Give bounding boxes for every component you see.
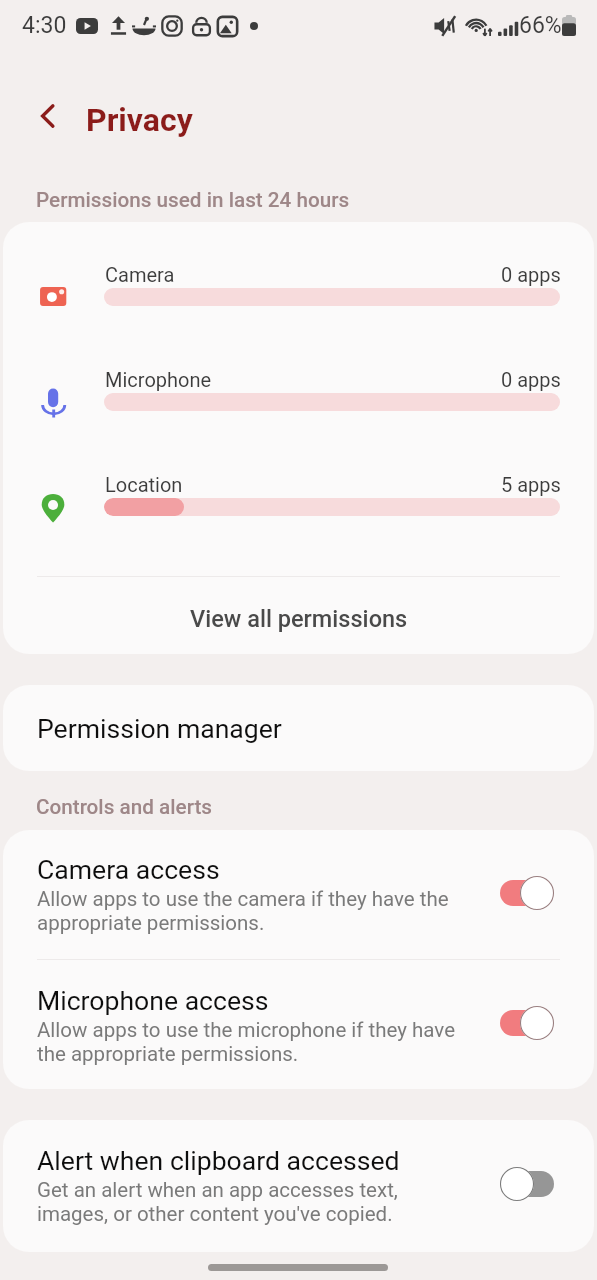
staticText: Privacy <box>86 101 193 139</box>
staticText: Controls and alerts <box>36 795 212 819</box>
button[interactable]: Navigate up <box>28 96 68 136</box>
button[interactable]: View all permissions <box>3 577 594 654</box>
staticText: Permissions used in last 24 hours <box>36 188 350 212</box>
staticText: Microphone access <box>37 985 269 1016</box>
staticText: View all permissions <box>190 605 408 633</box>
button[interactable]: Turn on Alert when clipboard accessed <box>499 1166 555 1202</box>
button[interactable]: Permission manager <box>3 685 594 771</box>
button[interactable]: Turn off Camera access <box>499 875 555 911</box>
button[interactable]: Alert when clipboard accessed <box>3 1120 594 1252</box>
staticText: 5 apps <box>501 473 561 496</box>
staticText: Location <box>105 473 183 496</box>
staticText: 4:30 <box>22 12 67 39</box>
button[interactable]: Microphone access <box>3 960 594 1089</box>
button[interactable]: Turn off Microphone access <box>499 1005 555 1041</box>
staticText: Microphone <box>105 368 212 391</box>
staticText: Allow apps to use the microphone if they… <box>37 1018 456 1066</box>
staticText: Allow apps to use the camera if they hav… <box>37 887 449 935</box>
staticText: 0 apps <box>501 263 561 286</box>
staticText: Alert when clipboard accessed <box>37 1145 400 1176</box>
staticText: Permission manager <box>37 713 282 744</box>
button[interactable]: Camera access <box>3 830 594 959</box>
staticText: Camera access <box>37 854 220 885</box>
staticText: 0 apps <box>501 368 561 391</box>
staticText: 66% <box>519 12 562 39</box>
staticText: Get an alert when an app accesses text, … <box>37 1178 398 1226</box>
staticText: Camera <box>105 263 175 286</box>
